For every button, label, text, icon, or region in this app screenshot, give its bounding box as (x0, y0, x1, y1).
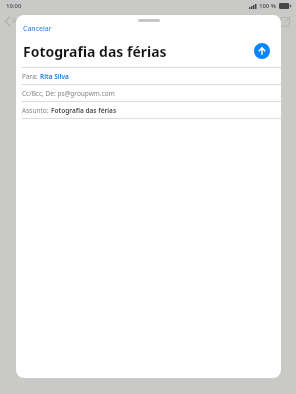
button[interactable]: Cancelar (20, 23, 55, 35)
button[interactable]: Cc/Bcc, De: ps@groupwm.com (16, 85, 281, 101)
button[interactable]: Para: (16, 68, 281, 84)
staticText: Fotografia das férias (51, 106, 117, 115)
button[interactable]: Back (3, 13, 23, 29)
staticText: Re (12, 16, 21, 26)
staticText: Para: (22, 72, 40, 81)
staticText: 100 % (259, 2, 277, 10)
button[interactable]: Send (254, 43, 270, 59)
staticText: Rita Silva (40, 72, 69, 81)
staticText: Fotografia das férias (23, 42, 254, 61)
staticText: Cc/Bcc, De: ps@groupwm.com (22, 89, 115, 98)
staticText: Cancelar (23, 24, 52, 34)
staticText: 10:00 (6, 2, 22, 10)
button[interactable]: Assunto: (16, 102, 281, 118)
staticText: Assunto: (22, 106, 51, 115)
button[interactable]: Compose (280, 16, 291, 27)
